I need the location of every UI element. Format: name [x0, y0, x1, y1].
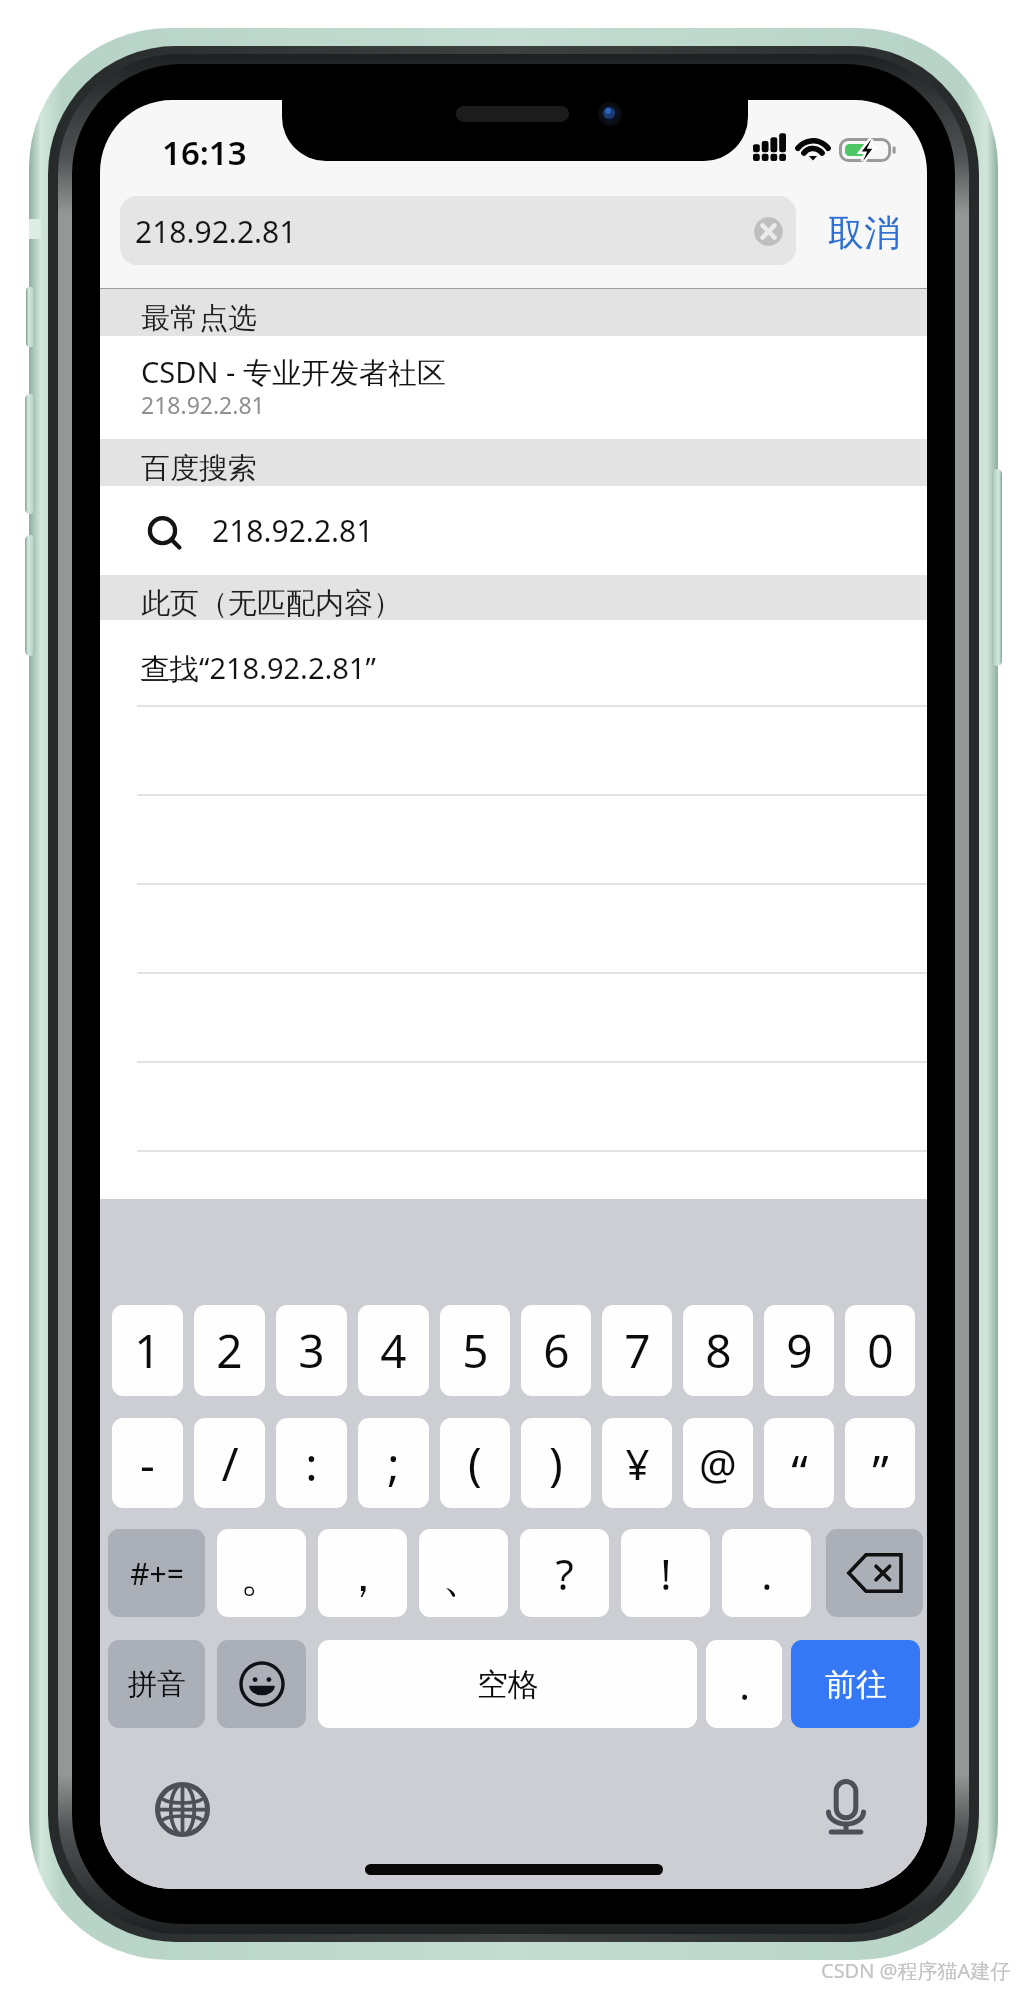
staticText: 0 — [867, 1319, 894, 1382]
button[interactable]: 5 — [440, 1305, 510, 1396]
button[interactable]: . — [706, 1640, 782, 1728]
button[interactable]: “ — [764, 1418, 834, 1508]
staticText: 3 — [298, 1319, 325, 1382]
button[interactable]: . — [722, 1529, 811, 1617]
staticText: 百度搜索 — [141, 450, 257, 487]
staticText: . — [761, 1545, 773, 1602]
button[interactable]: 取消 — [815, 202, 913, 262]
staticText: ( — [468, 1432, 482, 1495]
button[interactable]: / — [194, 1418, 265, 1508]
button[interactable]: #+= — [108, 1529, 205, 1617]
button[interactable]: @ — [683, 1418, 753, 1508]
button[interactable]: 1 — [112, 1305, 183, 1396]
staticText: . — [739, 1657, 750, 1711]
staticText: 218.92.2.81 — [141, 389, 265, 420]
staticText: 1 — [134, 1319, 161, 1382]
staticText: 。 — [240, 1549, 284, 1604]
staticText: 218.92.2.81 — [212, 510, 374, 551]
button[interactable]: Dictation — [816, 1772, 876, 1840]
staticText: 6 — [543, 1319, 570, 1382]
button[interactable]: ， — [318, 1529, 407, 1617]
staticText: CSDN @程序猫A建仔 — [821, 1957, 1011, 1984]
button[interactable]: 7 — [602, 1305, 672, 1396]
staticText: ¥ — [625, 1435, 650, 1492]
staticText: 取消 — [828, 210, 900, 255]
button[interactable]: 3 — [276, 1305, 347, 1396]
button[interactable]: 218.92.2.81 — [100, 486, 927, 575]
staticText: 9 — [786, 1319, 813, 1382]
button[interactable]: 。 — [217, 1529, 306, 1617]
staticText: 、 — [442, 1549, 486, 1604]
button[interactable]: 查找“218.92.2.81” — [100, 620, 927, 706]
staticText: 空格 — [477, 1665, 539, 1704]
staticText: 查找“218.92.2.81” — [141, 648, 376, 688]
button[interactable]: Delete — [826, 1529, 923, 1617]
button[interactable]: Emoji — [217, 1640, 306, 1728]
staticText: 2 — [216, 1319, 243, 1382]
button[interactable]: 前往 — [791, 1640, 920, 1728]
staticText: 拼音 — [128, 1666, 186, 1703]
button[interactable]: 8 — [683, 1305, 753, 1396]
staticText: ! — [660, 1545, 672, 1602]
button[interactable]: 拼音 — [108, 1640, 205, 1728]
staticText: “ — [791, 1440, 808, 1503]
button[interactable]: 空格 — [318, 1640, 697, 1728]
staticText: 5 — [462, 1319, 489, 1382]
button[interactable]: ¥ — [602, 1418, 672, 1508]
staticText: #+= — [130, 1553, 184, 1594]
staticText: ? — [555, 1545, 574, 1602]
button[interactable]: : — [276, 1418, 347, 1508]
button[interactable]: Switch keyboard — [150, 1777, 215, 1842]
button[interactable]: ; — [358, 1418, 429, 1508]
button[interactable]: 4 — [358, 1305, 429, 1396]
staticText: - — [140, 1432, 155, 1495]
button[interactable]: ( — [440, 1418, 510, 1508]
button[interactable]: 9 — [764, 1305, 834, 1396]
staticText: ” — [872, 1440, 889, 1503]
button[interactable]: 0 — [845, 1305, 915, 1396]
staticText: 8 — [705, 1319, 732, 1382]
staticText: 此页（无匹配内容） — [141, 585, 402, 622]
staticText: / — [221, 1432, 239, 1495]
button[interactable]: ) — [521, 1418, 591, 1508]
staticText: 218.92.2.81 — [135, 211, 297, 252]
button[interactable]: ” — [845, 1418, 915, 1508]
button[interactable]: - — [112, 1418, 183, 1508]
button[interactable]: CSDN - 专业开发者社区 — [100, 336, 927, 439]
staticText: ; — [387, 1432, 400, 1495]
staticText: @ — [699, 1435, 737, 1492]
staticText: 最常点选 — [141, 300, 257, 337]
button[interactable]: 2 — [194, 1305, 265, 1396]
staticText: 7 — [624, 1319, 651, 1382]
button[interactable]: Clear text — [754, 217, 783, 246]
staticText: 前往 — [825, 1665, 887, 1704]
staticText: ) — [549, 1432, 563, 1495]
staticText: 16:13 — [162, 130, 247, 175]
staticText: 4 — [380, 1319, 407, 1382]
button[interactable]: ! — [621, 1529, 710, 1617]
button[interactable]: ? — [520, 1529, 609, 1617]
staticText: : — [305, 1432, 318, 1495]
button[interactable]: 、 — [419, 1529, 508, 1617]
button[interactable]: 6 — [521, 1305, 591, 1396]
staticText: ， — [341, 1549, 385, 1604]
staticText: CSDN - 专业开发者社区 — [141, 352, 446, 392]
button[interactable]: 218.92.2.81 — [120, 196, 796, 265]
